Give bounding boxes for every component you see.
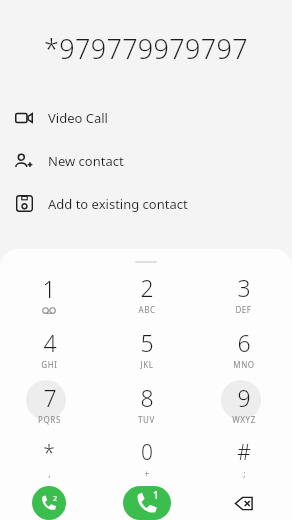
staticText: 2 bbox=[140, 272, 154, 303]
staticText: 5 bbox=[140, 327, 154, 358]
button[interactable]: 4 bbox=[0, 321, 98, 376]
button[interactable]: 3 bbox=[195, 266, 292, 321]
staticText: ; bbox=[243, 468, 246, 479]
staticText: WXYZ bbox=[232, 414, 256, 425]
button[interactable]: 1 bbox=[0, 266, 98, 321]
staticText: MNO bbox=[233, 359, 255, 370]
button[interactable]: # bbox=[195, 431, 292, 486]
button[interactable]: 0 bbox=[98, 431, 195, 486]
staticText: New contact bbox=[48, 152, 124, 170]
button[interactable]: Add to existing contact bbox=[0, 182, 292, 225]
button[interactable]: Call with SIM 1 bbox=[123, 486, 171, 520]
staticText: Video Call bbox=[48, 109, 108, 127]
staticText: 4 bbox=[43, 327, 57, 358]
button[interactable]: Backspace bbox=[221, 486, 267, 520]
staticText: GHI bbox=[41, 359, 58, 370]
staticText: 7 bbox=[43, 382, 57, 413]
button[interactable]: * bbox=[0, 431, 98, 486]
staticText: 1 bbox=[42, 273, 56, 304]
staticText: 3 bbox=[237, 272, 251, 303]
staticText: 9 bbox=[237, 382, 251, 413]
staticText: ABC bbox=[138, 304, 156, 315]
staticText: JKL bbox=[140, 359, 154, 370]
staticText: 8 bbox=[140, 382, 154, 413]
button[interactable]: New contact bbox=[0, 139, 292, 182]
button[interactable]: 8 bbox=[98, 376, 195, 431]
staticText: 1 bbox=[153, 488, 159, 502]
staticText: , bbox=[48, 468, 51, 479]
staticText: Add to existing contact bbox=[48, 195, 188, 213]
button[interactable]: 7 bbox=[0, 376, 98, 431]
button[interactable]: Call with SIM 2 bbox=[32, 486, 66, 520]
button[interactable]: 2 bbox=[98, 266, 195, 321]
button[interactable]: Video Call bbox=[0, 96, 292, 139]
button[interactable]: 9 bbox=[195, 376, 292, 431]
staticText: PQRS bbox=[38, 414, 61, 425]
staticText: DEF bbox=[235, 304, 252, 315]
button[interactable]: 5 bbox=[98, 321, 195, 376]
staticText: 6 bbox=[237, 327, 251, 358]
staticText: 0 bbox=[141, 438, 153, 467]
staticText: *979779979797 bbox=[44, 30, 248, 67]
staticText: * bbox=[43, 438, 55, 467]
staticText: TUV bbox=[138, 414, 155, 425]
staticText: 2 bbox=[53, 493, 58, 503]
staticText: + bbox=[144, 468, 150, 479]
button[interactable]: 6 bbox=[195, 321, 292, 376]
staticText: # bbox=[237, 438, 251, 467]
